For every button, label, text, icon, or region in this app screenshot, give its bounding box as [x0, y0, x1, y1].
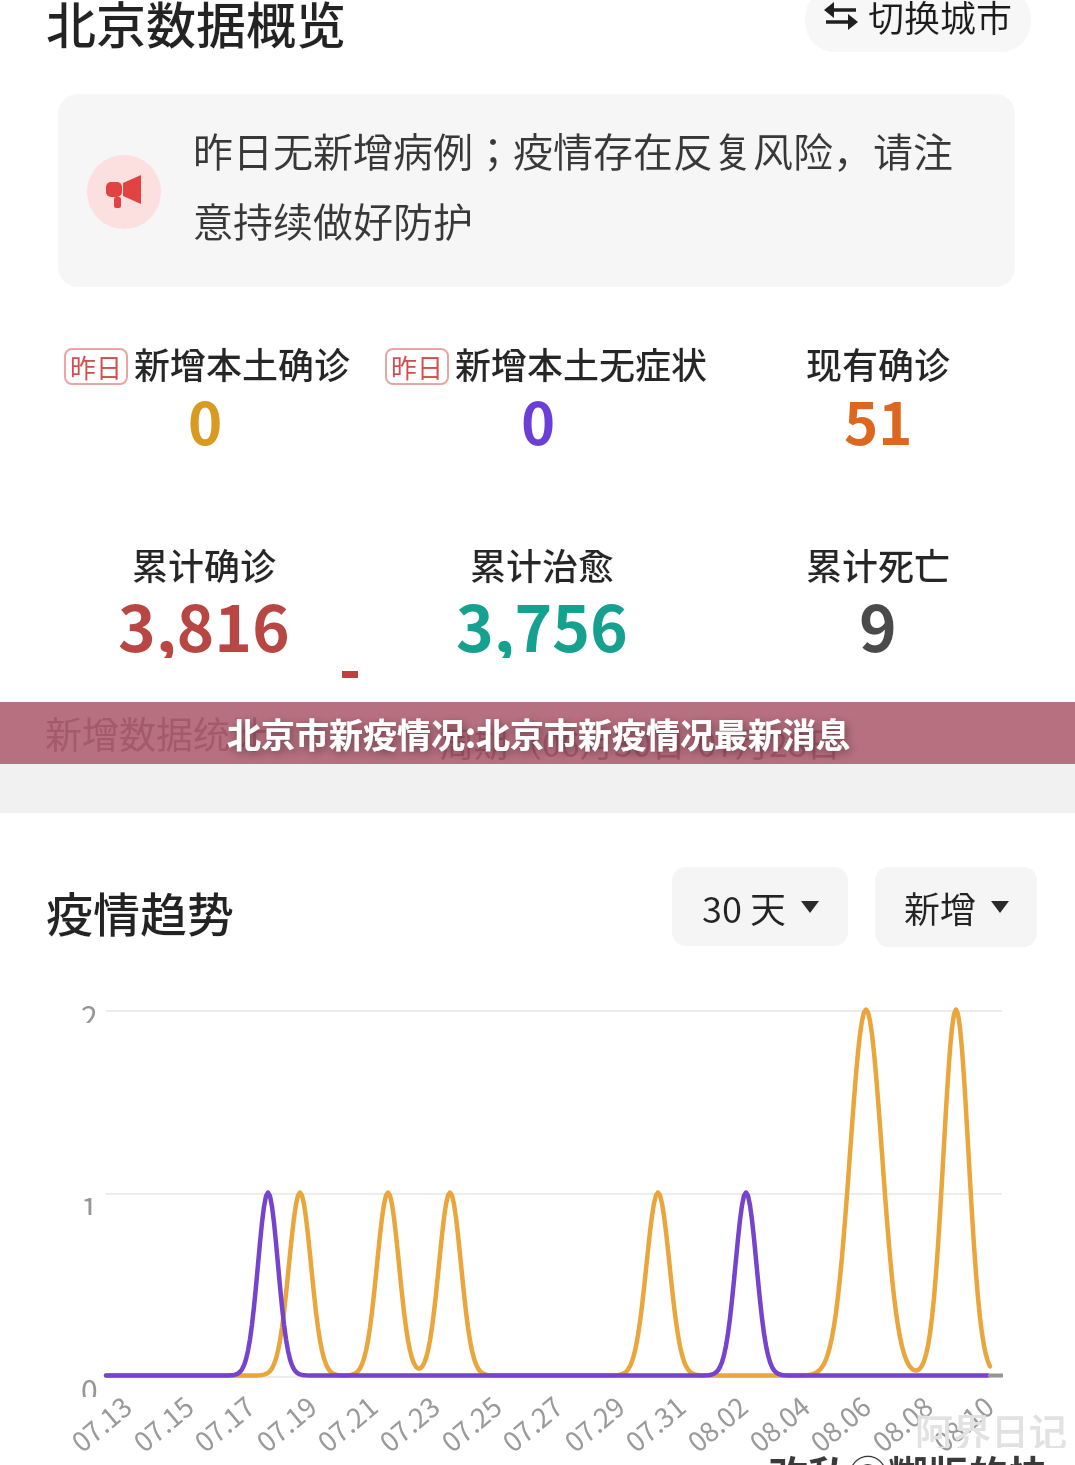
button[interactable]: 昨日无新增病例；疫情存在反复风险，请注 意持续做好防护 [58, 94, 1015, 287]
staticText: 疫情趋势 [46, 877, 234, 943]
staticText: 07.25 [432, 1386, 508, 1458]
staticText: 07.21 [308, 1386, 384, 1458]
staticText: 30 天 [702, 881, 787, 933]
staticText: 新增本土无症状 [455, 337, 708, 389]
staticText: 07.19 [247, 1386, 323, 1458]
staticText: 周期（06月30日-07月28日 [440, 718, 841, 767]
staticText: 08.10 [924, 1386, 1000, 1458]
staticText: 9 [859, 578, 897, 658]
staticText: 07.27 [493, 1386, 569, 1458]
staticText: 0 [521, 378, 556, 458]
staticText: 51 [844, 378, 913, 458]
staticText: 3,816 [118, 578, 290, 658]
staticText: 1 [81, 1185, 98, 1215]
staticText: 昨日 [391, 348, 444, 385]
staticText: 07.23 [370, 1386, 446, 1458]
staticText: 新增本土确诊 [134, 337, 351, 389]
button[interactable]: 切换城市 [805, 0, 1031, 52]
staticText: 08.04 [740, 1386, 816, 1458]
staticText: 07.15 [124, 1386, 200, 1458]
staticText: 昨日 [70, 348, 123, 385]
staticText: 累计死亡 [806, 538, 951, 590]
staticText: 07.17 [185, 1386, 261, 1458]
staticText: 07.13 [62, 1386, 138, 1458]
staticText: 改私②糊版的快速 [768, 1444, 1075, 1465]
staticText: 3,756 [456, 578, 628, 658]
staticText: 0 [188, 378, 223, 458]
staticText: 北京数据概览 [46, 0, 346, 52]
staticText: 07.31 [616, 1386, 692, 1458]
staticText: 阿界日记 [915, 1402, 1068, 1448]
staticText: 累计治愈 [470, 538, 615, 590]
staticText: 新增 [904, 881, 977, 933]
staticText: 08.06 [801, 1386, 877, 1458]
button[interactable]: 新增 [875, 867, 1037, 947]
button[interactable]: 30 天 [672, 867, 848, 946]
staticText: 切换城市 [868, 0, 1013, 42]
staticText: 07.29 [555, 1386, 631, 1458]
staticText: 北京市新疫情况:北京市新疫情况最新消息 [227, 709, 851, 758]
staticText: 0 [81, 1367, 98, 1397]
staticText: 新增数据统计 [45, 706, 267, 760]
staticText: 2 [81, 993, 98, 1023]
staticText: 现有确诊 [806, 337, 951, 389]
staticText: 08.02 [678, 1386, 754, 1458]
staticText: 昨日无新增病例；疫情存在反复风险，请注 意持续做好防护 [193, 121, 953, 249]
staticText: 累计确诊 [132, 538, 277, 590]
staticText: 08.08 [863, 1386, 939, 1458]
